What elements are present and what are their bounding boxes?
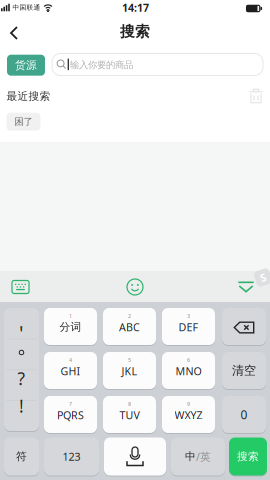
staticText: 2 [128, 312, 131, 320]
staticText: ! [19, 394, 24, 417]
staticText: 7 [69, 400, 72, 408]
staticText: 搜索 [120, 22, 150, 40]
staticText: 符 [16, 450, 27, 463]
staticText: 4 [69, 356, 72, 364]
staticText: 分词 [59, 320, 81, 333]
button[interactable]: 9 [162, 396, 215, 433]
staticText: 0 [240, 406, 247, 422]
staticText: JKL [121, 364, 137, 378]
button[interactable]: 中 [171, 437, 225, 475]
staticText: 1 [69, 312, 72, 320]
staticText: WXYZ [174, 408, 202, 422]
button[interactable]: Search field [52, 53, 263, 75]
button[interactable]: 5 [103, 352, 156, 389]
staticText: 8 [128, 400, 131, 408]
staticText: /英 [196, 449, 211, 464]
staticText: 14:17 [122, 0, 149, 15]
button[interactable]: 0 [222, 396, 266, 433]
staticText: ABC [119, 320, 140, 334]
staticText: 最近搜索 [6, 90, 50, 103]
button[interactable]: 2 [103, 308, 156, 345]
button[interactable]: 4 [44, 352, 97, 389]
staticText: 5 [128, 356, 131, 364]
button[interactable]: 符 [4, 437, 39, 475]
staticText: 123 [62, 449, 80, 464]
staticText: TUV [119, 408, 139, 422]
button[interactable]: 7 [44, 396, 97, 433]
button[interactable]: Punctuation [4, 308, 39, 431]
staticText: 搜索 [237, 450, 259, 463]
staticText: 3 [187, 312, 190, 320]
staticText: 困了 [14, 116, 32, 127]
button[interactable]: Keyboard [12, 280, 29, 293]
button[interactable]: 货源 [7, 55, 45, 76]
button[interactable]: 3 [162, 308, 215, 345]
staticText: GHI [60, 364, 80, 378]
button[interactable]: 8 [103, 396, 156, 433]
staticText: 6 [187, 356, 190, 364]
staticText: 货源 [15, 59, 37, 72]
button[interactable] [104, 437, 166, 475]
staticText: S [260, 270, 266, 285]
staticText: ? [17, 367, 25, 390]
staticText: MNO [175, 364, 201, 378]
staticText: PQRS [57, 408, 84, 422]
button[interactable]: Hide keyboard [236, 280, 256, 294]
staticText: 中国联通 [12, 3, 40, 12]
staticText: 清空 [232, 363, 256, 378]
button[interactable]: 清空 [222, 352, 266, 389]
button[interactable]: Clear recent searches [246, 86, 266, 106]
button[interactable]: 搜索 [229, 437, 267, 475]
staticText: 9 [187, 400, 190, 408]
staticText: 输入你要的商品 [70, 59, 133, 71]
staticText: ' [19, 319, 24, 346]
button[interactable]: 1 [44, 308, 97, 345]
button[interactable]: Emoji [127, 279, 143, 295]
staticText: 中 [185, 450, 196, 463]
button[interactable] [222, 308, 266, 345]
button[interactable]: 123 [44, 437, 99, 475]
button[interactable]: 困了 [6, 113, 40, 131]
button[interactable]: 6 [162, 352, 215, 389]
button[interactable]: Back [3, 22, 25, 44]
staticText: DEF [178, 320, 198, 334]
